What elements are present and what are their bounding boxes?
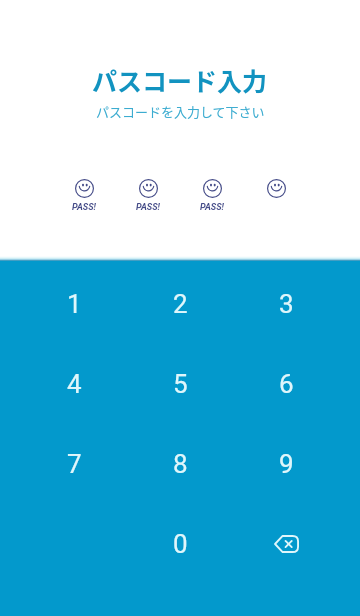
staticText: PASS! xyxy=(200,202,224,213)
staticText: 6 xyxy=(279,369,294,399)
button[interactable]: 6 xyxy=(233,344,339,424)
staticText: 2 xyxy=(173,289,188,319)
button[interactable]: 8 xyxy=(127,424,233,504)
staticText: PASS! xyxy=(136,202,160,213)
staticText: 8 xyxy=(173,449,188,479)
button[interactable]: 2 xyxy=(127,264,233,344)
staticText: パスコードを入力して下さい xyxy=(96,102,265,121)
button[interactable]: 7 xyxy=(21,424,127,504)
button[interactable]: 0 xyxy=(127,504,233,584)
staticText: PASS! xyxy=(72,202,96,213)
staticText: 7 xyxy=(67,449,82,479)
button[interactable]: 3 xyxy=(233,264,339,344)
button[interactable]: 5 xyxy=(127,344,233,424)
staticText: 0 xyxy=(173,529,188,559)
staticText: 5 xyxy=(173,369,188,399)
staticText: 3 xyxy=(279,289,294,319)
staticText: 4 xyxy=(67,369,82,399)
staticText: パスコード入力 xyxy=(92,62,268,98)
staticText: 1 xyxy=(67,289,82,319)
button[interactable]: 1 xyxy=(21,264,127,344)
button[interactable]: 4 xyxy=(21,344,127,424)
staticText: 9 xyxy=(279,449,294,479)
button[interactable]: 9 xyxy=(233,424,339,504)
button[interactable]: Delete xyxy=(233,504,339,584)
